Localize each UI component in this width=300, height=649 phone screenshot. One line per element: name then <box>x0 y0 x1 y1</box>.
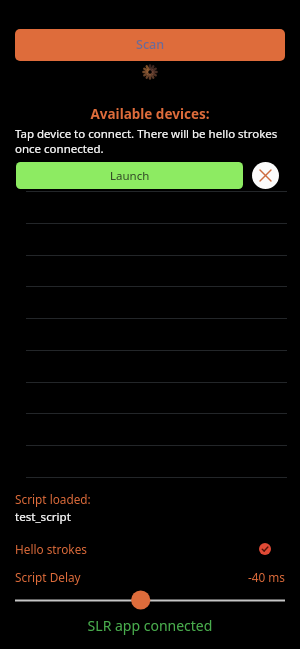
button[interactable]: Empty device slot <box>0 350 300 382</box>
button[interactable]: Script delay slider <box>0 588 300 612</box>
button[interactable]: Launch <box>16 162 243 189</box>
button[interactable]: Empty device slot <box>0 382 300 414</box>
staticText: Launch <box>110 168 150 184</box>
button[interactable]: Empty device slot <box>0 223 300 255</box>
staticText: Scan <box>136 36 165 53</box>
staticText: -40 ms <box>0 569 285 585</box>
staticText: Tap device to connect. There will be hel… <box>15 126 287 156</box>
button[interactable]: Hello strokes enabled <box>259 543 271 555</box>
staticText: SLR app connected <box>0 616 300 635</box>
button[interactable]: Empty device slot <box>0 191 300 223</box>
button[interactable]: Empty device slot <box>0 255 300 287</box>
button[interactable]: Empty device slot <box>0 445 300 477</box>
staticText: Available devices: <box>0 105 300 123</box>
staticText: Script loaded: <box>15 491 91 507</box>
staticText: Hello strokes <box>15 541 87 557</box>
staticText: Script Delay <box>15 569 81 585</box>
staticText: test_script <box>15 509 71 525</box>
button[interactable]: Empty device slot <box>0 318 300 350</box>
button[interactable]: Empty device slot <box>0 286 300 318</box>
button[interactable]: Scan <box>15 29 285 61</box>
button[interactable]: Disconnect <box>252 162 279 189</box>
button[interactable]: Empty device slot <box>0 413 300 445</box>
